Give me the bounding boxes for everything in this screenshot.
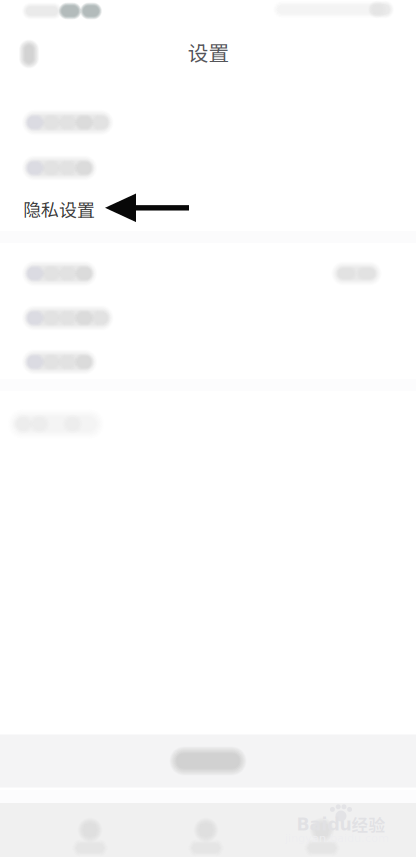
button[interactable] <box>0 339 416 384</box>
button[interactable] <box>0 251 416 296</box>
button[interactable]: Tab <box>264 803 380 857</box>
button[interactable] <box>0 401 416 446</box>
button[interactable]: Tab <box>32 803 148 857</box>
button[interactable] <box>0 193 416 238</box>
button[interactable]: Tab <box>148 803 264 857</box>
staticText: 隐私设置 <box>23 196 95 222</box>
button[interactable] <box>0 100 416 145</box>
staticText: Baidu <box>296 814 351 835</box>
staticText: 设置 <box>187 37 229 67</box>
button[interactable] <box>0 295 416 340</box>
staticText: jingyan.baidu.com <box>285 831 389 845</box>
button[interactable] <box>0 145 416 190</box>
button[interactable]: Back <box>7 32 51 76</box>
staticText: 经验 <box>351 812 385 836</box>
button[interactable] <box>0 734 416 787</box>
